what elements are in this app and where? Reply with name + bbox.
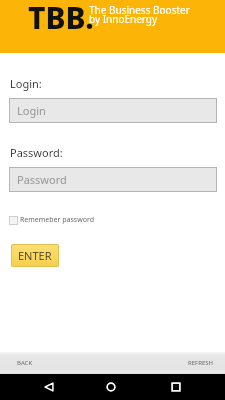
staticText: The Business Booster by InnoEnergy (89, 3, 190, 26)
staticText: Password: (10, 145, 63, 160)
button[interactable]: Password (9, 167, 217, 192)
button[interactable]: Recents (164, 377, 188, 397)
staticText: Login: (10, 76, 42, 91)
staticText: Login (17, 103, 46, 118)
button[interactable]: Rememeber password (9, 215, 94, 225)
staticText: Password (17, 172, 67, 187)
staticText: Rememeber password (20, 215, 94, 225)
button[interactable]: Back (37, 377, 61, 397)
staticText: REFRESH (188, 359, 213, 367)
button[interactable]: ENTER (11, 244, 59, 267)
button[interactable]: Login (9, 98, 217, 123)
staticText: BACK (17, 359, 33, 367)
staticText: TBB. (28, 0, 94, 38)
button[interactable]: REFRESH (188, 359, 213, 367)
staticText: ENTER (18, 248, 52, 263)
button[interactable]: BACK (17, 359, 33, 367)
button[interactable]: Home (99, 377, 123, 397)
